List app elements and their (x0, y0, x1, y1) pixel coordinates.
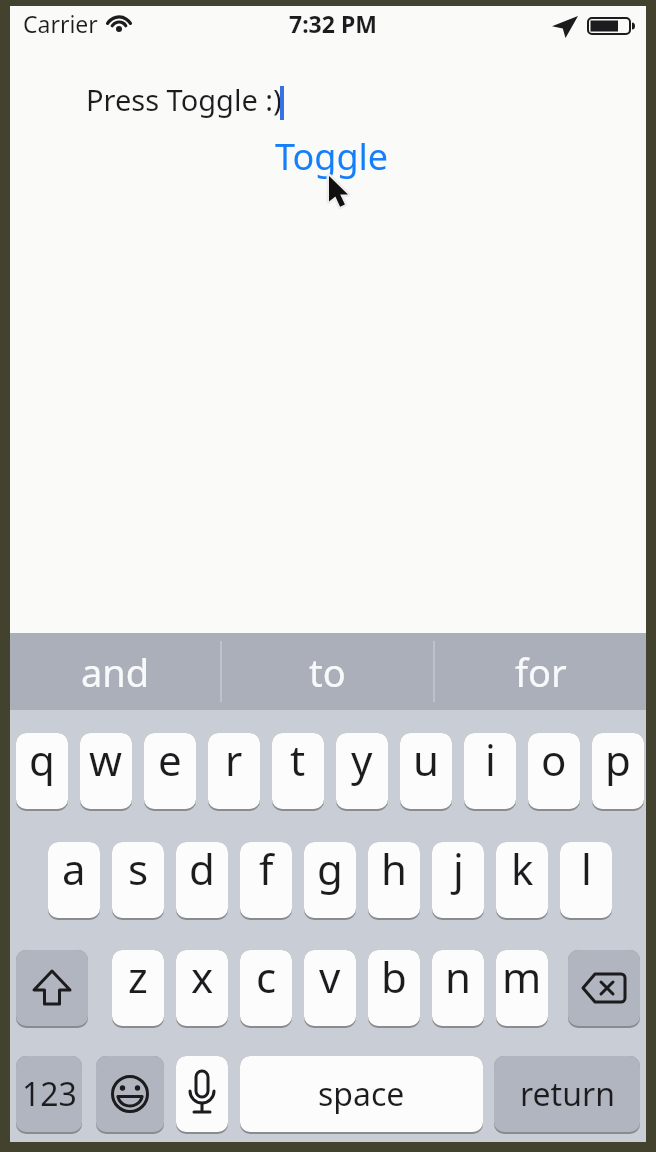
button[interactable]: Toggle (275, 132, 389, 181)
button[interactable]: k (496, 842, 548, 920)
staticText: e (158, 731, 182, 788)
staticText: return (520, 1072, 615, 1116)
staticText: Carrier (23, 8, 98, 39)
button[interactable]: o (528, 733, 580, 811)
staticText: l (581, 840, 592, 897)
staticText: z (128, 948, 148, 1005)
staticText: x (191, 948, 214, 1005)
staticText: w (89, 731, 123, 788)
staticText: j (453, 840, 464, 897)
staticText: t (290, 731, 306, 788)
button[interactable]: b (368, 950, 420, 1028)
button[interactable]: for (435, 633, 646, 710)
staticText: q (29, 731, 55, 788)
button[interactable]: p (592, 733, 644, 811)
button[interactable]: n (432, 950, 484, 1028)
button[interactable]: e (144, 733, 196, 811)
staticText: r (225, 731, 243, 788)
staticText: p (605, 731, 631, 788)
staticText: f (259, 840, 274, 897)
staticText: b (381, 948, 407, 1005)
button[interactable]: c (240, 950, 292, 1028)
button[interactable]: to (222, 633, 433, 710)
staticText: 123 (22, 1072, 77, 1116)
staticText: for (515, 646, 567, 698)
button[interactable]: z (112, 950, 164, 1028)
staticText: i (485, 731, 496, 788)
staticText: a (62, 840, 86, 897)
button[interactable]: w (80, 733, 132, 811)
button[interactable]: r (208, 733, 260, 811)
button[interactable]: m (496, 950, 548, 1028)
button[interactable]: h (368, 842, 420, 920)
staticText: d (189, 840, 215, 897)
button[interactable]: a (48, 842, 100, 920)
staticText: 7:32 PM (289, 8, 377, 39)
staticText: g (317, 840, 343, 897)
button[interactable]: l (560, 842, 612, 920)
button[interactable]: i (464, 733, 516, 811)
button[interactable]: 123 (16, 1056, 82, 1134)
staticText: Toggle (275, 132, 389, 181)
button[interactable] (176, 1056, 228, 1134)
staticText: u (413, 731, 439, 788)
staticText: n (445, 948, 471, 1005)
staticText: h (381, 840, 407, 897)
staticText: y (351, 731, 373, 788)
button[interactable]: return (494, 1056, 640, 1134)
staticText: space (318, 1072, 405, 1116)
button[interactable]: space (240, 1056, 483, 1134)
button[interactable]: q (16, 733, 68, 811)
staticText: s (128, 840, 149, 897)
button[interactable]: g (304, 842, 356, 920)
button[interactable] (96, 1056, 164, 1134)
button[interactable]: d (176, 842, 228, 920)
button[interactable]: and (10, 633, 220, 710)
button[interactable]: u (400, 733, 452, 811)
button[interactable]: f (240, 842, 292, 920)
staticText: k (511, 840, 534, 897)
button[interactable] (16, 950, 88, 1028)
button[interactable]: s (112, 842, 164, 920)
staticText: c (256, 948, 277, 1005)
button[interactable] (568, 950, 640, 1028)
staticText: m (502, 948, 542, 1005)
button[interactable]: t (272, 733, 324, 811)
button[interactable]: x (176, 950, 228, 1028)
staticText: and (81, 646, 150, 698)
staticText: to (309, 646, 346, 698)
button[interactable]: y (336, 733, 388, 811)
staticText: Press Toggle :) (86, 80, 282, 119)
button[interactable]: v (304, 950, 356, 1028)
staticText: v (319, 948, 341, 1005)
staticText: o (541, 731, 567, 788)
button[interactable]: j (432, 842, 484, 920)
